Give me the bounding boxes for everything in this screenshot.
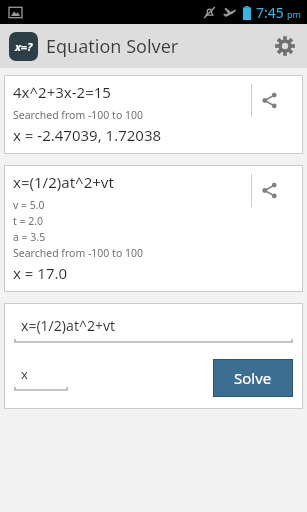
button[interactable]: x=(1/2)at^2+vt <box>14 316 293 343</box>
staticText: pm <box>287 8 301 20</box>
staticText: Solve <box>234 368 272 388</box>
staticText: Searched from -100 to 100 <box>13 246 144 260</box>
button[interactable]: Share <box>251 75 303 125</box>
button[interactable]: x <box>14 365 68 391</box>
staticText: x=(1/2)at^2+vt <box>13 172 114 192</box>
button[interactable]: x=(1/2)at^2+vt <box>4 165 303 292</box>
staticText: x = -2.47039, 1.72038 <box>13 125 162 145</box>
staticText: x=(1/2)at^2+vt <box>21 316 116 335</box>
button[interactable]: Solve <box>213 359 293 397</box>
staticText: a = 3.5 <box>13 230 46 244</box>
button[interactable]: Settings <box>263 24 307 68</box>
staticText: t = 2.0 <box>13 214 44 228</box>
staticText: x = 17.0 <box>13 263 68 283</box>
button[interactable]: 4x^2+3x-2=15 <box>4 75 303 154</box>
button[interactable]: Share <box>251 165 303 215</box>
staticText: x=? <box>15 39 33 54</box>
staticText: 4x^2+3x-2=15 <box>13 82 111 102</box>
staticText: 7:45 <box>256 3 284 22</box>
staticText: v = 5.0 <box>13 198 45 212</box>
staticText: Searched from -100 to 100 <box>13 108 144 122</box>
staticText: x <box>21 365 28 383</box>
staticText: Equation Solver <box>46 34 179 59</box>
